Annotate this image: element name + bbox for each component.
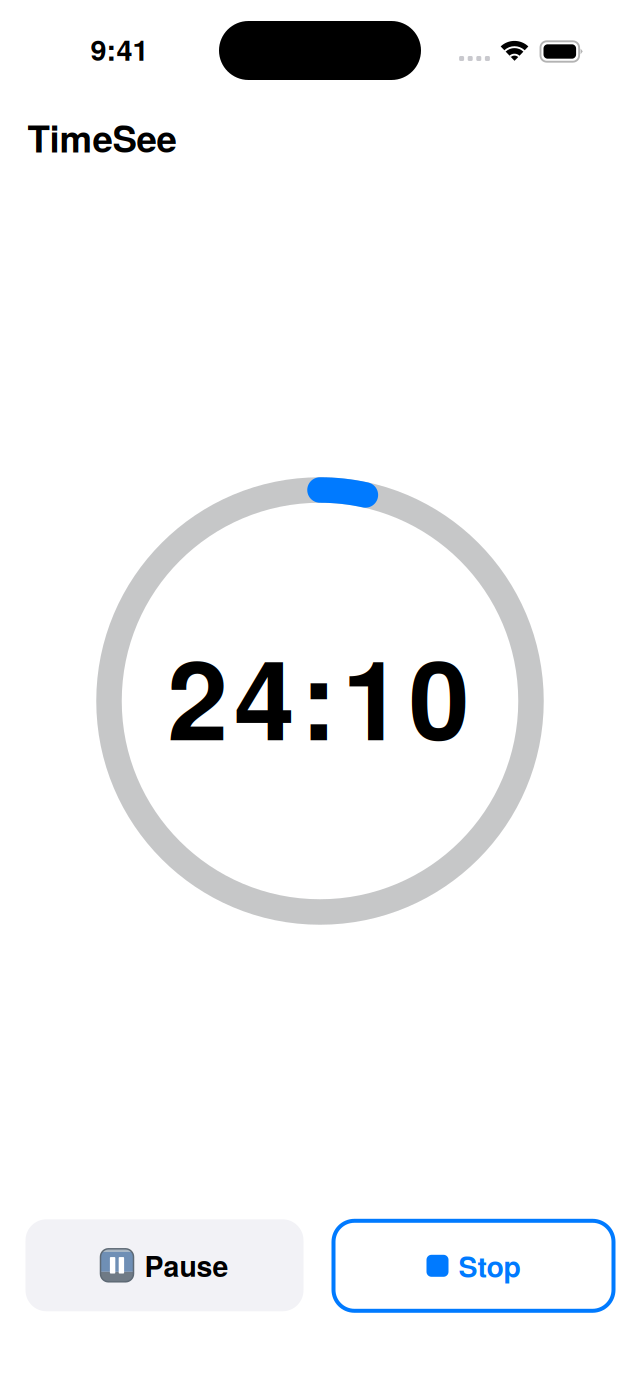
staticText: Stop — [458, 1245, 520, 1286]
staticText: Pause — [144, 1245, 228, 1286]
staticText: 24:10 — [167, 617, 470, 774]
staticText: TimeSee — [27, 111, 176, 164]
staticText: 9:41 — [90, 28, 148, 70]
button[interactable]: Stop — [333, 1221, 613, 1311]
button[interactable]: Pause — [25, 1219, 303, 1311]
